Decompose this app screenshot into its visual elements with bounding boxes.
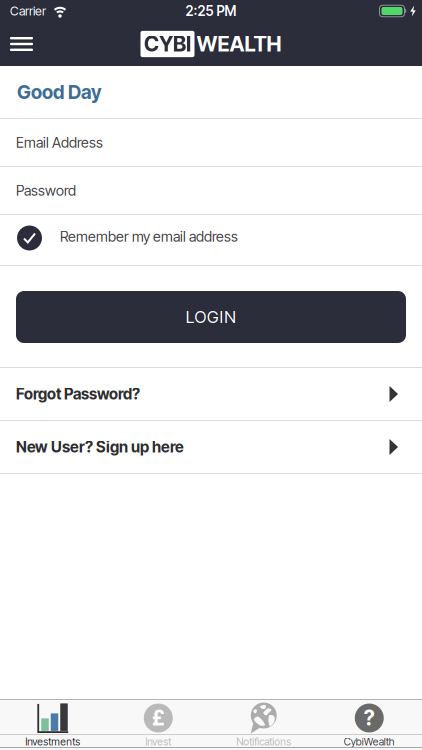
- staticText: Investments: [25, 735, 80, 748]
- button[interactable]: Email Address: [0, 119, 422, 166]
- staticText: Notifications: [236, 735, 291, 748]
- staticText: Forgot Password?: [16, 385, 140, 403]
- staticText: CYBI: [144, 31, 191, 57]
- button[interactable]: [0, 29, 33, 59]
- button[interactable]: £: [105, 702, 211, 734]
- button[interactable]: New User? Sign up here: [0, 421, 422, 473]
- staticText: Carrier: [10, 3, 46, 19]
- staticText: £: [152, 705, 165, 730]
- button[interactable]: [0, 702, 105, 734]
- staticText: Password: [16, 182, 76, 199]
- staticText: Email Address: [16, 134, 103, 151]
- staticText: CybiWealth: [344, 735, 395, 748]
- staticText: Remember my email address: [60, 228, 238, 245]
- button[interactable]: ?: [316, 702, 422, 734]
- staticText: WEALTH: [196, 31, 281, 57]
- staticText: LOGIN: [186, 307, 236, 327]
- button[interactable]: LOGIN: [0, 291, 422, 343]
- staticText: Invest: [145, 735, 171, 748]
- staticText: ?: [364, 705, 375, 730]
- button[interactable]: Forgot Password?: [0, 368, 422, 420]
- staticText: Good Day: [17, 80, 102, 104]
- staticText: 2:25 PM: [185, 3, 236, 19]
- button[interactable]: Remember my email address: [0, 215, 422, 265]
- button[interactable]: Password: [0, 167, 422, 214]
- staticText: New User? Sign up here: [16, 438, 184, 456]
- button[interactable]: [211, 702, 316, 734]
